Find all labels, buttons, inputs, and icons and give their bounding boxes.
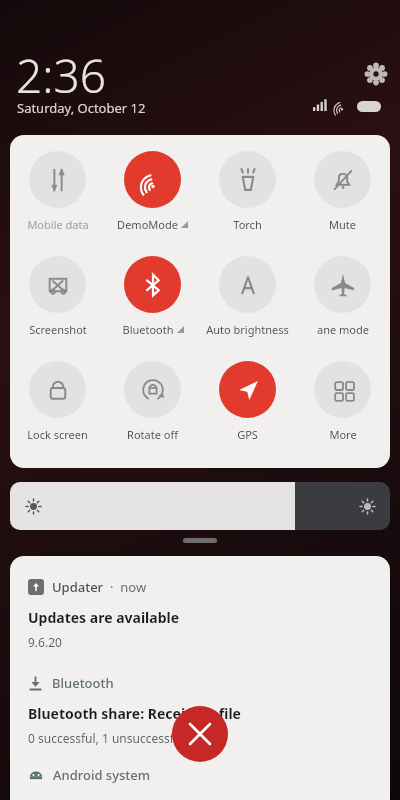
staticText: Updater	[52, 578, 104, 596]
button[interactable]: Android system	[10, 766, 390, 784]
staticText: Bluetooth	[52, 674, 114, 692]
staticText: Saturday, October 12	[17, 99, 146, 117]
button[interactable]	[10, 482, 390, 530]
button[interactable]: Bluetooth	[105, 256, 200, 361]
button[interactable]: GPS	[200, 361, 295, 466]
button[interactable]: Screenshot	[10, 256, 105, 361]
staticText: Screenshot	[29, 322, 87, 337]
button[interactable]: Torch	[200, 151, 295, 256]
staticText: Auto brightness	[206, 322, 289, 337]
staticText: 0 successful, 1 unsuccessful.	[28, 730, 188, 746]
staticText: Torch	[233, 217, 262, 232]
button[interactable]: ane mode	[295, 256, 390, 361]
staticText: Updates are available	[28, 608, 180, 627]
button[interactable]: Bluetooth	[10, 674, 390, 746]
staticText: Mute	[329, 217, 356, 232]
button[interactable]: Settings	[360, 58, 392, 90]
staticText: DemoMode	[117, 217, 178, 232]
button[interactable]: Auto brightness	[200, 256, 295, 361]
staticText: Android system	[53, 766, 151, 784]
button[interactable]: Lock screen	[10, 361, 105, 466]
button[interactable]: DemoMode	[105, 151, 200, 256]
staticText: 2:36	[16, 44, 107, 107]
button[interactable]: Close	[172, 706, 228, 762]
staticText: · now	[110, 578, 147, 596]
button[interactable]: Updater	[10, 556, 390, 656]
staticText: ane mode	[317, 322, 369, 337]
button[interactable]: Rotate off	[105, 361, 200, 466]
staticText: Mobile data	[27, 217, 89, 232]
staticText: More	[329, 427, 357, 442]
staticText: Bluetooth	[122, 322, 174, 337]
button[interactable]: Mute	[295, 151, 390, 256]
button[interactable]: More	[295, 361, 390, 466]
button[interactable]: Mobile data	[10, 151, 105, 256]
staticText: 9.6.20	[28, 634, 62, 650]
staticText: GPS	[237, 427, 258, 442]
staticText: Bluetooth share: Receiving file	[28, 704, 241, 723]
staticText: Lock screen	[27, 427, 88, 442]
staticText: Rotate off	[127, 427, 178, 442]
